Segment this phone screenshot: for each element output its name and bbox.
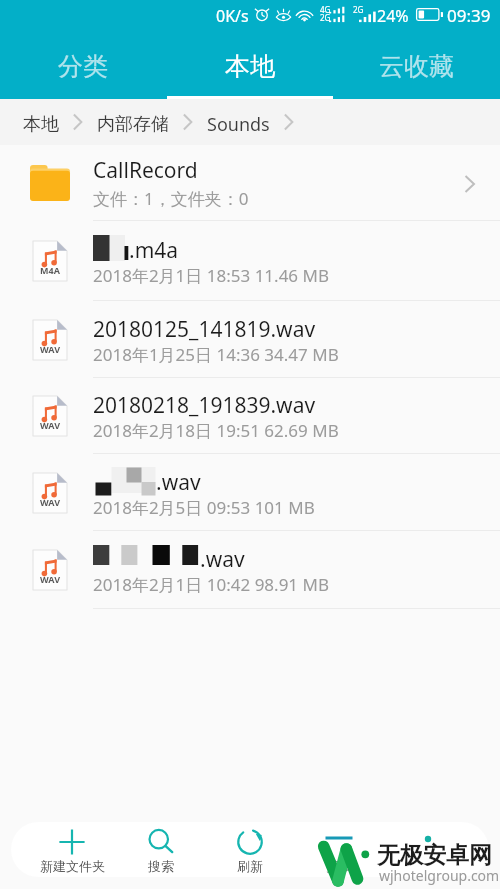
button[interactable]: 刷新	[210, 822, 290, 877]
button[interactable]: WAV	[0, 531, 500, 609]
button[interactable]: 本地	[23, 107, 59, 138]
button[interactable]: Sounds	[207, 106, 270, 139]
button[interactable]: 云收藏	[333, 29, 500, 99]
staticText: 云收藏	[379, 51, 454, 82]
staticText: 2018年1月25日 14:36 34.47 MB	[93, 343, 339, 366]
staticText: 2G	[320, 12, 331, 23]
staticText: WAV	[33, 343, 67, 355]
other: Next folder	[270, 110, 308, 134]
staticText: 搜索	[148, 858, 174, 874]
button[interactable]: 更多	[299, 822, 379, 877]
staticText: 更多	[326, 858, 352, 874]
staticText: wjhotelgroup.com	[379, 866, 500, 885]
button[interactable]: 内部存储	[97, 107, 169, 138]
staticText: 无极安卓网	[377, 841, 492, 870]
staticText: 0K/s	[216, 5, 249, 27]
staticText: 4G	[320, 4, 331, 15]
staticText: 本地	[225, 51, 275, 82]
staticText: 20180125_141819.wav	[93, 315, 316, 341]
staticText: 09:39	[447, 4, 491, 27]
other: Next folder	[169, 110, 207, 134]
button[interactable]: 本地	[166, 29, 333, 99]
button[interactable]: 分类	[0, 29, 166, 99]
button[interactable]: 搜索	[121, 822, 201, 877]
staticText: WAV	[33, 419, 67, 431]
button[interactable]: 新建文件夹	[32, 822, 112, 877]
button[interactable]: M4A	[0, 221, 500, 301]
staticText: .wav	[156, 468, 201, 494]
staticText: 刷新	[237, 858, 263, 874]
staticText: 2018年2月1日 10:42 98.91 MB	[93, 573, 329, 596]
staticText: 2G	[353, 4, 364, 15]
button[interactable]: WAV	[0, 378, 500, 454]
staticText: .wav	[200, 545, 245, 571]
staticText: 24%	[377, 5, 409, 27]
staticText: 20180218_191839.wav	[93, 391, 316, 417]
staticText: WAV	[33, 573, 67, 585]
staticText: .m4a	[129, 236, 179, 262]
staticText: WAV	[33, 496, 67, 508]
staticText: 内部存储	[97, 113, 169, 136]
staticText: 本地	[23, 113, 59, 136]
button[interactable]: WAV	[0, 454, 500, 531]
button[interactable]: WAV	[0, 301, 500, 378]
button[interactable]: More options	[388, 822, 468, 877]
staticText: Sounds	[207, 112, 270, 137]
staticText: M4A	[33, 264, 67, 276]
staticText: 分类	[58, 51, 108, 82]
staticText: 2018年2月5日 09:53 101 MB	[93, 496, 315, 519]
staticText: 文件：1，文件夹：0	[93, 187, 249, 210]
other: Next folder	[59, 110, 97, 134]
staticText: 2018年2月18日 19:51 62.69 MB	[93, 419, 339, 442]
staticText: CallRecord	[93, 156, 198, 185]
staticText: 新建文件夹	[40, 858, 105, 874]
other: Open folder	[453, 166, 487, 200]
staticText: 2018年2月1日 18:53 11.46 MB	[93, 264, 329, 287]
button[interactable]: CallRecord	[0, 145, 500, 221]
